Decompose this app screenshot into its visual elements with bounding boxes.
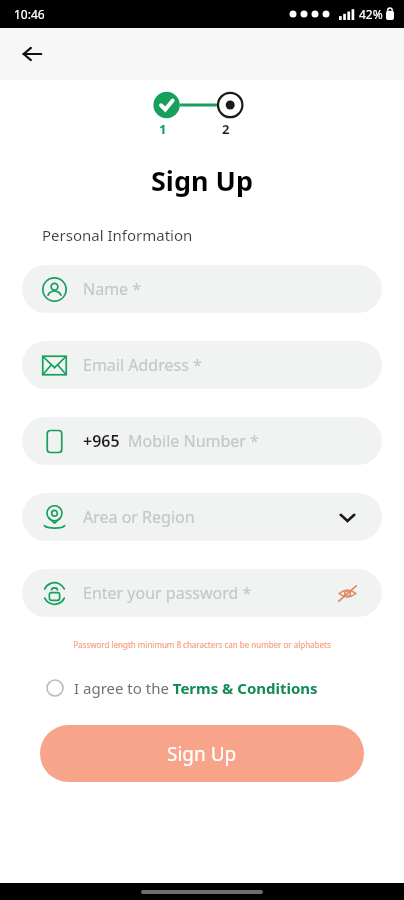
staticText: Name *: [83, 278, 142, 300]
staticText: +965: [83, 430, 120, 452]
button[interactable]: Back: [14, 36, 50, 72]
staticText: Personal Information: [42, 225, 193, 245]
button[interactable]: Show password: [332, 578, 362, 608]
button[interactable]: +965: [22, 417, 382, 465]
button[interactable]: Enter your password *: [22, 569, 382, 617]
button[interactable]: Select area or region: [332, 502, 362, 532]
staticText: Enter your password *: [83, 582, 252, 604]
staticText: Sign Up: [167, 741, 237, 767]
staticText: 1: [159, 120, 167, 138]
staticText: I agree to the Terms & Conditions: [74, 678, 318, 698]
staticText: 42%: [359, 6, 383, 22]
staticText: Area or Region: [83, 506, 195, 528]
button[interactable]: Email Address *: [22, 341, 382, 389]
staticText: Email Address *: [83, 354, 202, 376]
staticText: Sign Up: [0, 162, 404, 199]
button[interactable]: Name *: [22, 265, 382, 313]
staticText: Mobile Number *: [128, 430, 259, 452]
staticText: Password length minimum 8 characters can…: [0, 639, 404, 650]
staticText: 10:46: [14, 6, 45, 22]
button[interactable]: Area or Region: [22, 493, 382, 541]
button[interactable]: I agree to the Terms & Conditions: [40, 678, 364, 698]
button[interactable]: Sign Up: [40, 725, 364, 782]
staticText: 2: [222, 120, 230, 138]
